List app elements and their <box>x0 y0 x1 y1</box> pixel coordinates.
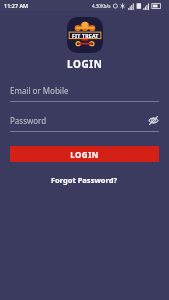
staticText: 11:27 AM <box>4 2 29 9</box>
button[interactable]: Email or Mobile <box>10 85 159 102</box>
staticText: 4.30Kb/s <box>92 3 111 9</box>
button[interactable]: LOGIN <box>10 146 159 162</box>
staticText: Password <box>10 115 147 126</box>
staticText: LOGIN <box>67 57 103 71</box>
staticText: Email or Mobile <box>10 85 159 96</box>
button[interactable]: Forgot Password? <box>43 172 126 188</box>
staticText: FIT TREAT <box>72 32 99 39</box>
button[interactable]: Password <box>10 114 159 132</box>
staticText: LOGIN <box>70 149 99 160</box>
staticText: Forgot Password? <box>51 175 118 185</box>
button[interactable]: Toggle password visibility <box>147 114 159 126</box>
